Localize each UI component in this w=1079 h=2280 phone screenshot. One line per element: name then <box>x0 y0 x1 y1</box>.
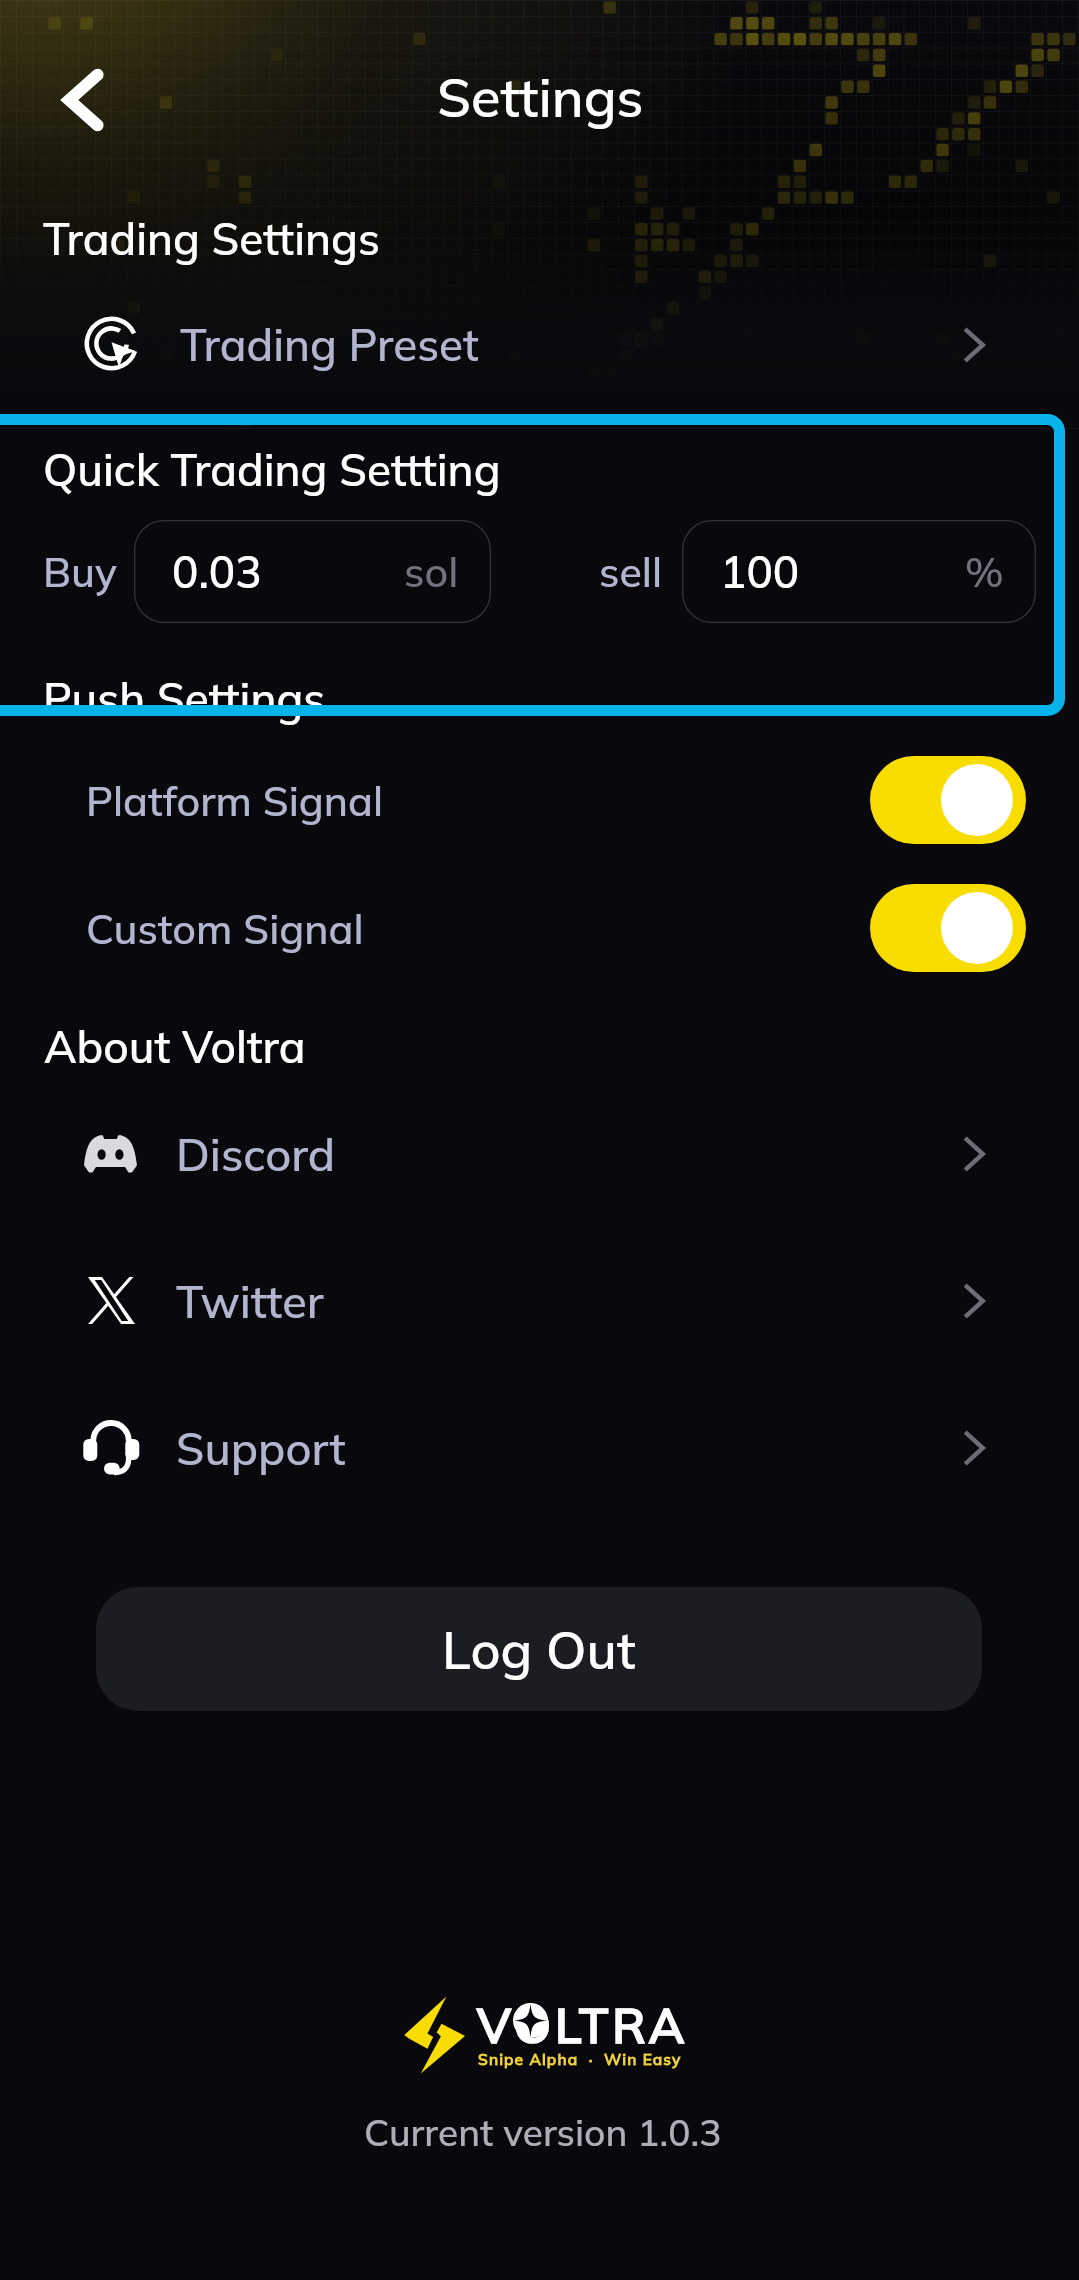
button[interactable]: Trading Preset <box>0 300 1079 392</box>
staticText: sol <box>404 546 459 597</box>
button[interactable]: Support <box>0 1385 1079 1497</box>
button[interactable]: Log Out <box>96 1587 982 1711</box>
staticText: Log Out <box>442 1617 636 1682</box>
button[interactable]: 100 <box>682 520 1036 623</box>
staticText: Quick Trading Settting <box>43 442 501 497</box>
staticText: sell <box>599 546 662 597</box>
button[interactable]: Platform Signal <box>0 728 1079 872</box>
staticText: Support <box>176 1420 346 1476</box>
staticText: Push Settings <box>43 671 326 726</box>
button[interactable]: Custom Signal <box>0 856 1079 1000</box>
button[interactable]: Twitter <box>0 1238 1079 1350</box>
staticText: Buy <box>43 546 117 597</box>
staticText: Discord <box>176 1126 336 1182</box>
staticText: Trading Settings <box>43 211 380 266</box>
button[interactable]: Discord <box>0 1091 1079 1203</box>
button[interactable]: Back <box>48 60 128 140</box>
staticText: Platform Signal <box>86 775 384 826</box>
staticText: Twitter <box>176 1273 324 1329</box>
staticText: About Voltra <box>44 1019 306 1074</box>
staticText: Custom Signal <box>86 903 364 954</box>
staticText: Settings <box>437 63 644 131</box>
button[interactable]: 0.03 <box>134 520 491 623</box>
staticText: VOLTRA <box>477 1995 689 2055</box>
staticText: Trading Preset <box>180 317 479 372</box>
staticText: Current version 1.0.3 <box>364 2109 722 2155</box>
staticText: Snipe Alpha · Win Easy <box>478 2049 682 2068</box>
staticText: 100 <box>720 544 800 599</box>
staticText: % <box>965 546 1004 597</box>
staticText: 0.03 <box>172 544 262 599</box>
